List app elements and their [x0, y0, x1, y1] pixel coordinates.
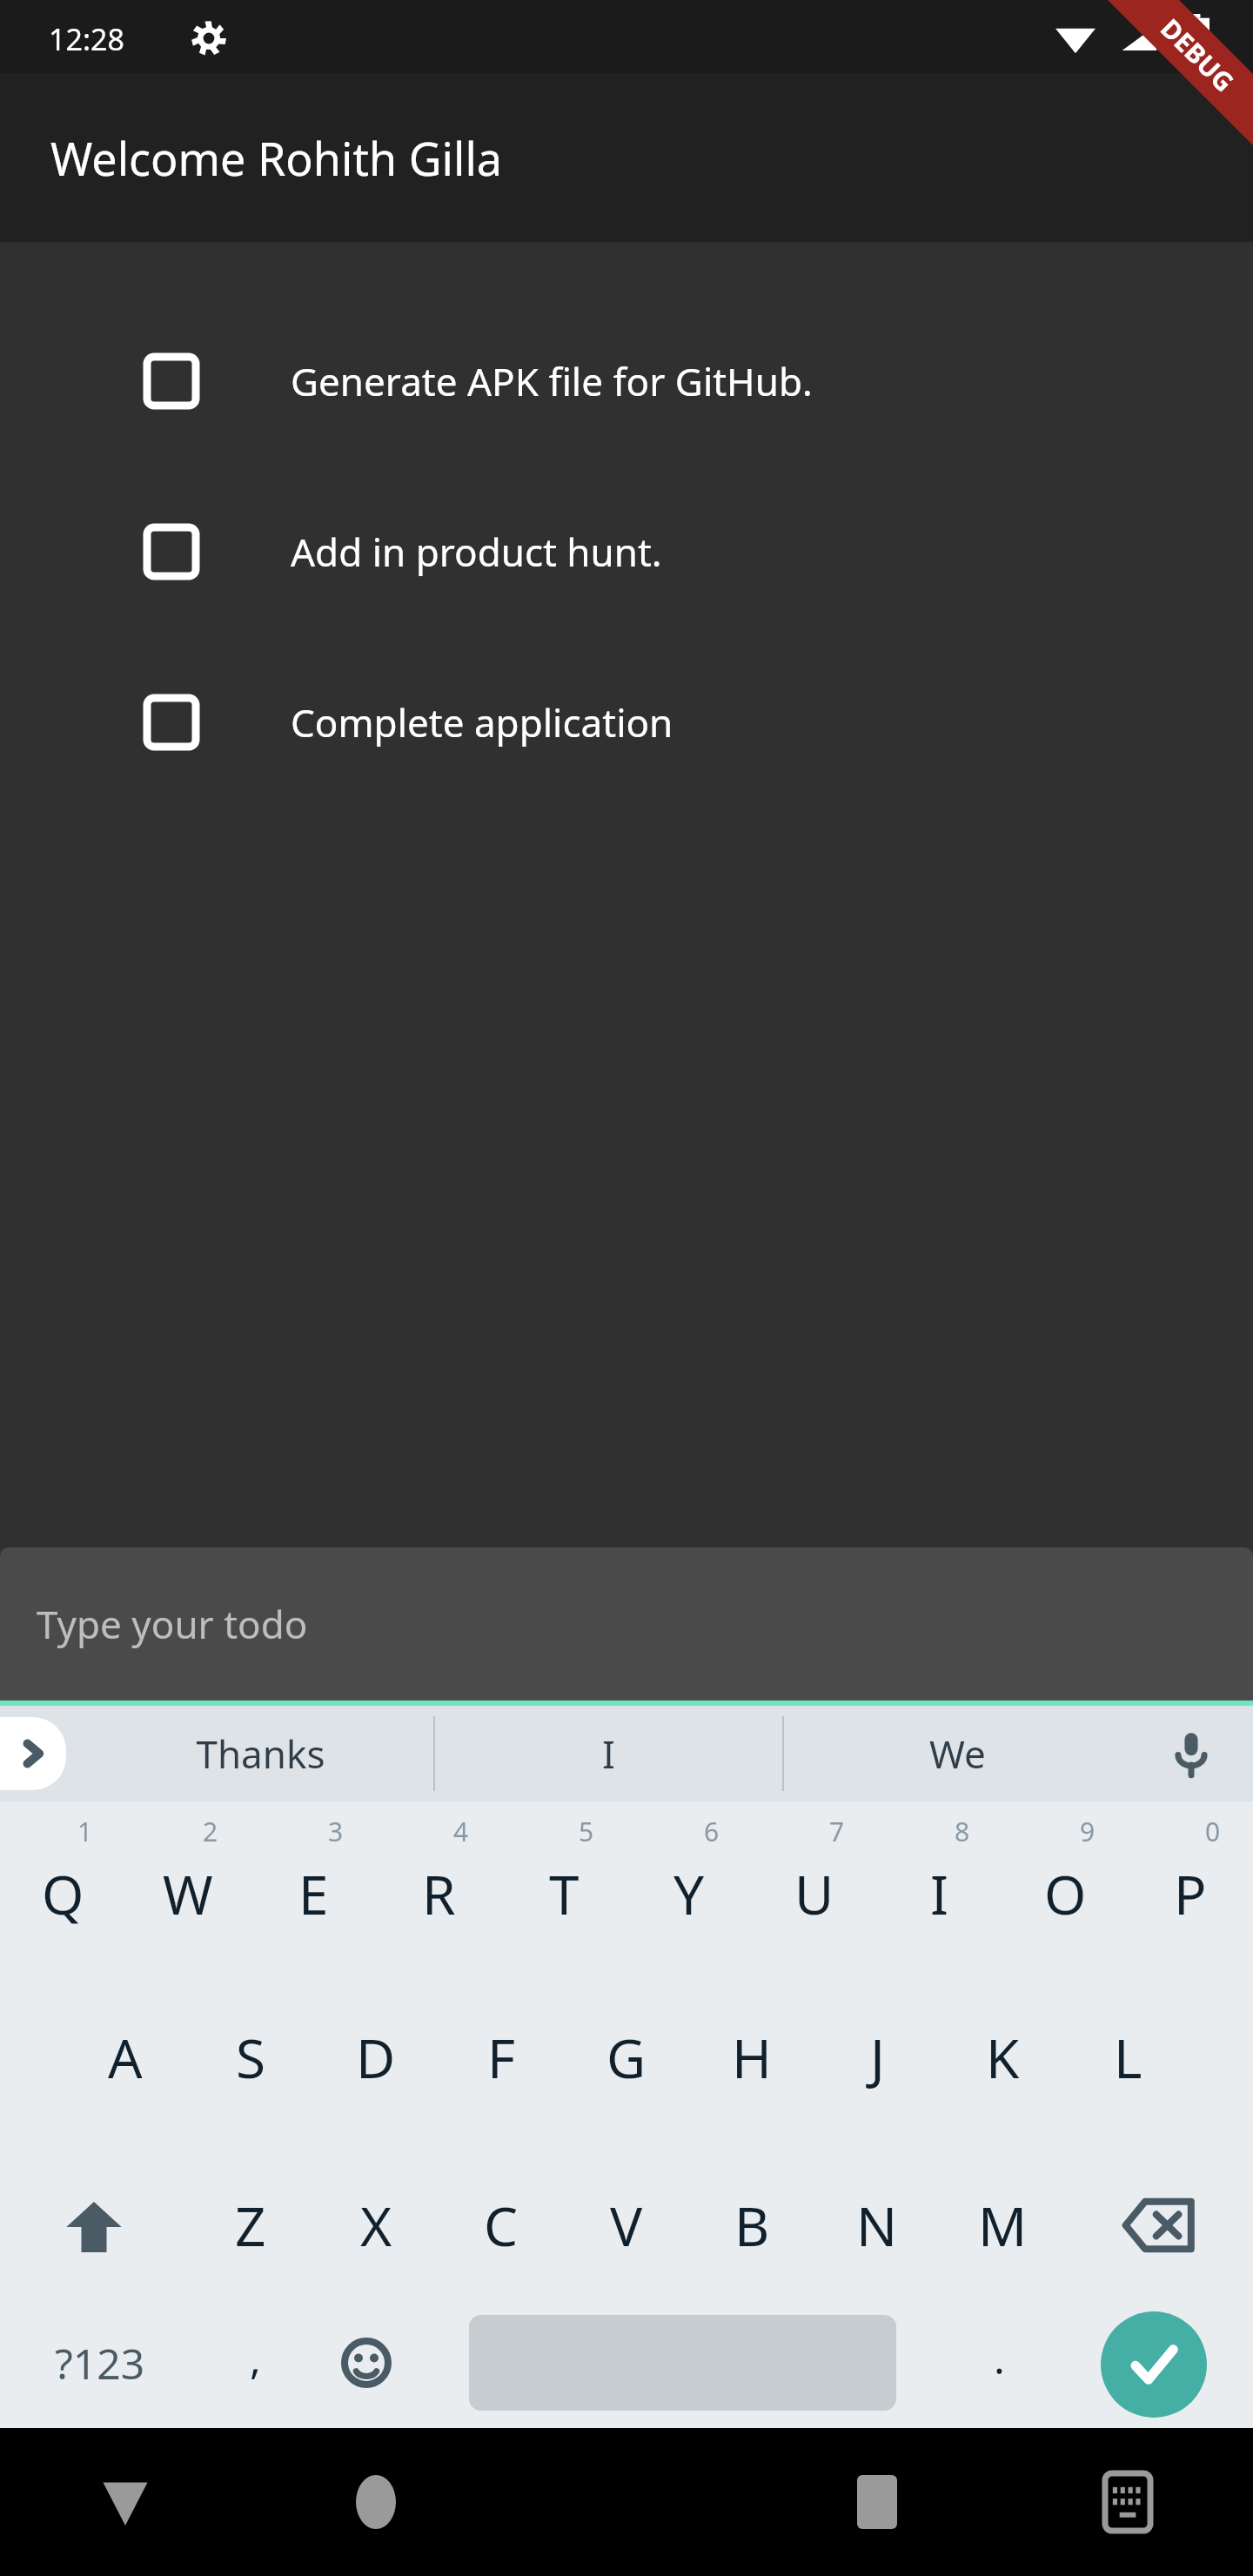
- staticText: T: [549, 1857, 580, 1930]
- staticText: R: [422, 1857, 456, 1930]
- button[interactable]: .: [943, 2315, 1055, 2428]
- button[interactable]: G: [564, 1976, 689, 2150]
- staticText: V: [610, 2189, 643, 2262]
- staticText: S: [236, 2021, 266, 2094]
- button[interactable]: Shift: [0, 2150, 188, 2315]
- staticText: ,: [250, 2330, 261, 2386]
- button[interactable]: L: [1065, 1976, 1190, 2150]
- staticText: 5: [579, 1814, 594, 1849]
- staticText: 8: [955, 1814, 970, 1849]
- staticText: 0: [1205, 1814, 1221, 1849]
- button[interactable]: 9: [1002, 1801, 1128, 1976]
- staticText: D: [356, 2021, 396, 2094]
- button[interactable]: 0: [1128, 1801, 1253, 1976]
- staticText: W: [163, 1857, 213, 1930]
- button[interactable]: N: [814, 2150, 940, 2315]
- staticText: DEBUG: [1153, 11, 1242, 100]
- staticText: 1: [77, 1814, 93, 1849]
- button[interactable]: Enter: [1055, 2315, 1253, 2428]
- button[interactable]: F: [439, 1976, 564, 2150]
- button[interactable]: Thanks: [87, 1706, 433, 1801]
- staticText: N: [856, 2189, 898, 2262]
- staticText: O: [1044, 1857, 1087, 1930]
- staticText: Type your todo: [37, 1598, 308, 1650]
- button[interactable]: D: [313, 1976, 439, 2150]
- staticText: 6: [704, 1814, 720, 1849]
- staticText: Q: [42, 1857, 84, 1930]
- button[interactable]: Add in product hunt.: [0, 466, 1253, 637]
- button[interactable]: ?123: [0, 2315, 199, 2428]
- button[interactable]: 2: [125, 1801, 251, 1976]
- button[interactable]: Emoji: [311, 2315, 422, 2428]
- button[interactable]: Backspace: [1065, 2150, 1253, 2315]
- staticText: E: [298, 1857, 329, 1930]
- button[interactable]: C: [439, 2150, 564, 2315]
- staticText: Y: [673, 1857, 705, 1930]
- button[interactable]: 8: [877, 1801, 1002, 1976]
- staticText: I: [930, 1857, 949, 1930]
- button[interactable]: M: [940, 2150, 1065, 2315]
- staticText: X: [360, 2189, 392, 2262]
- button[interactable]: I: [435, 1706, 782, 1801]
- button[interactable]: H: [689, 1976, 814, 2150]
- button[interactable]: 1: [0, 1801, 125, 1976]
- staticText: U: [794, 1857, 834, 1930]
- button[interactable]: B: [689, 2150, 814, 2315]
- button[interactable]: Hide keyboard: [0, 2428, 251, 2576]
- staticText: Generate APK file for GitHub.: [291, 355, 813, 407]
- button[interactable]: X: [313, 2150, 439, 2315]
- staticText: A: [108, 2021, 143, 2094]
- button[interactable]: Switch keyboard: [1002, 2428, 1253, 2576]
- staticText: 7: [829, 1814, 845, 1849]
- button[interactable]: Generate APK file for GitHub.: [0, 296, 1253, 466]
- staticText: Thanks: [196, 1727, 325, 1780]
- button[interactable]: Recents: [752, 2428, 1002, 2576]
- button[interactable]: [422, 2315, 943, 2428]
- staticText: We: [929, 1727, 986, 1780]
- staticText: 9: [1080, 1814, 1096, 1849]
- staticText: ?123: [55, 2335, 145, 2392]
- button[interactable]: Home: [251, 2428, 501, 2576]
- button[interactable]: 6: [626, 1801, 752, 1976]
- staticText: L: [1114, 2021, 1142, 2094]
- button[interactable]: S: [188, 1976, 313, 2150]
- staticText: 3: [328, 1814, 344, 1849]
- staticText: F: [487, 2021, 516, 2094]
- staticText: Add in product hunt.: [291, 526, 662, 578]
- staticText: .: [994, 2330, 1005, 2386]
- button[interactable]: V: [564, 2150, 689, 2315]
- button[interactable]: A: [63, 1976, 188, 2150]
- staticText: Z: [235, 2189, 266, 2262]
- staticText: H: [732, 2021, 772, 2094]
- button[interactable]: We: [784, 1706, 1131, 1801]
- button[interactable]: Complete application: [0, 637, 1253, 808]
- button[interactable]: J: [814, 1976, 940, 2150]
- staticText: I: [602, 1727, 615, 1780]
- button[interactable]: 5: [501, 1801, 626, 1976]
- staticText: G: [606, 2021, 647, 2094]
- staticText: B: [734, 2189, 770, 2262]
- button[interactable]: 4: [376, 1801, 501, 1976]
- button[interactable]: Type your todo: [0, 1547, 1253, 1701]
- button[interactable]: Z: [188, 2150, 313, 2315]
- staticText: M: [978, 2189, 1028, 2262]
- button[interactable]: ,: [199, 2315, 311, 2428]
- staticText: J: [870, 2021, 885, 2094]
- button[interactable]: Voice input: [1161, 1723, 1222, 1784]
- staticText: Welcome Rohith Gilla: [50, 127, 503, 189]
- staticText: 2: [203, 1814, 218, 1849]
- button[interactable]: Expand suggestions: [0, 1717, 66, 1790]
- staticText: C: [484, 2189, 519, 2262]
- staticText: 12:28: [49, 19, 124, 59]
- staticText: P: [1174, 1857, 1207, 1930]
- button[interactable]: 7: [752, 1801, 877, 1976]
- staticText: K: [986, 2021, 1020, 2094]
- staticText: 4: [453, 1814, 469, 1849]
- button[interactable]: 3: [251, 1801, 376, 1976]
- staticText: Complete application: [291, 696, 673, 748]
- button[interactable]: K: [940, 1976, 1065, 2150]
